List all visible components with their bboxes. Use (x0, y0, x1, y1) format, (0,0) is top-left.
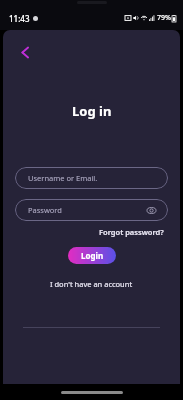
staticText: 11:43 (9, 13, 30, 24)
staticText: Login (81, 250, 104, 261)
staticText: Log in (72, 102, 112, 120)
button[interactable]: I don't have an account (46, 277, 137, 291)
button[interactable]: Password (15, 199, 168, 221)
staticText: 79% (157, 13, 171, 23)
button[interactable]: Login (68, 247, 116, 264)
staticText: I don't have an account (50, 279, 133, 289)
button[interactable]: Back (11, 38, 39, 66)
staticText: Forgot password? (99, 227, 164, 237)
button[interactable]: Username or Email. (15, 167, 168, 189)
staticText: Username or Email. (28, 173, 98, 183)
staticText: Password (28, 205, 62, 215)
button[interactable]: Forgot password? (97, 225, 166, 239)
button[interactable]: Show password (146, 205, 157, 216)
